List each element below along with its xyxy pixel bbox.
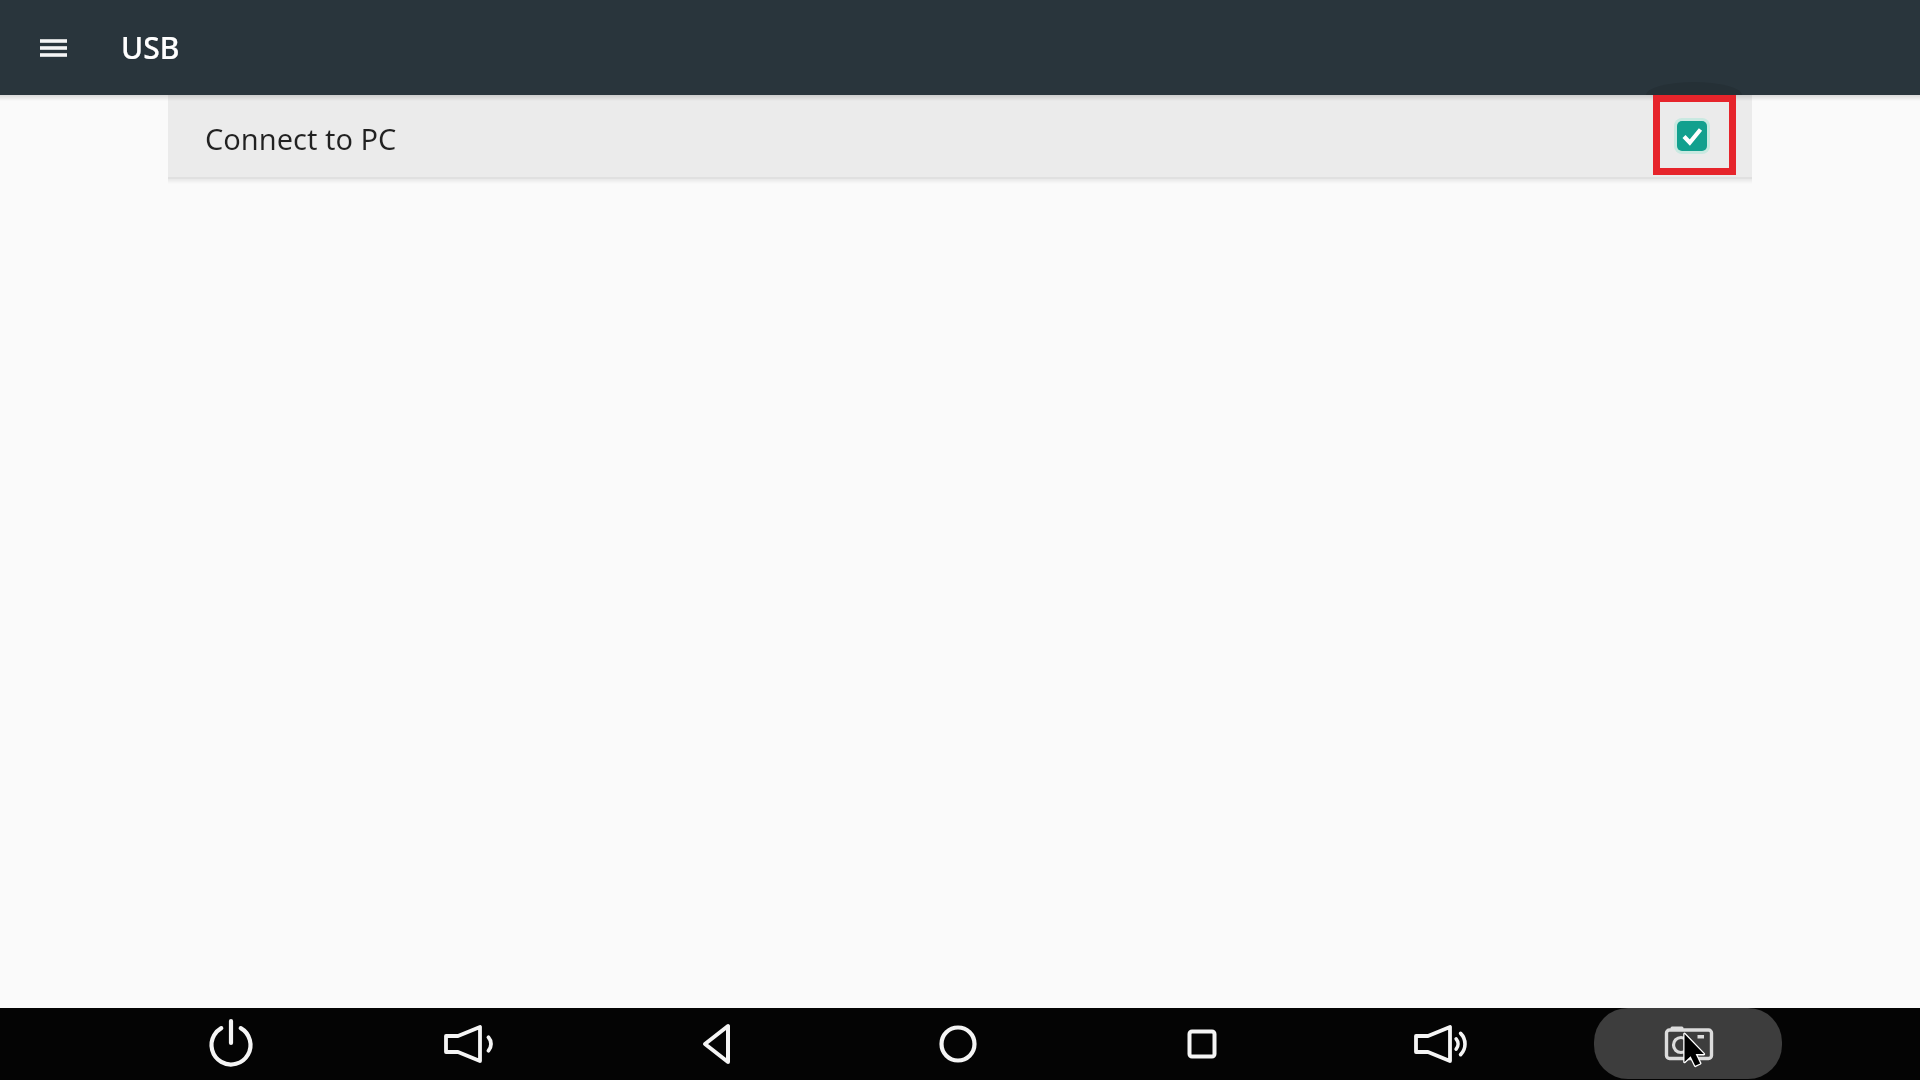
button[interactable]: [195, 1008, 267, 1080]
button[interactable]: [1408, 1008, 1480, 1080]
button[interactable]: [680, 1008, 752, 1080]
button[interactable]: [922, 1008, 994, 1080]
button[interactable]: Connect to PC: [168, 95, 1752, 177]
button[interactable]: [1594, 1008, 1782, 1079]
staticText: Connect to PC: [205, 119, 397, 158]
button[interactable]: [1677, 121, 1707, 151]
button[interactable]: [1166, 1008, 1238, 1080]
button[interactable]: [30, 24, 78, 72]
staticText: USB: [121, 27, 180, 68]
button[interactable]: [434, 1008, 506, 1080]
